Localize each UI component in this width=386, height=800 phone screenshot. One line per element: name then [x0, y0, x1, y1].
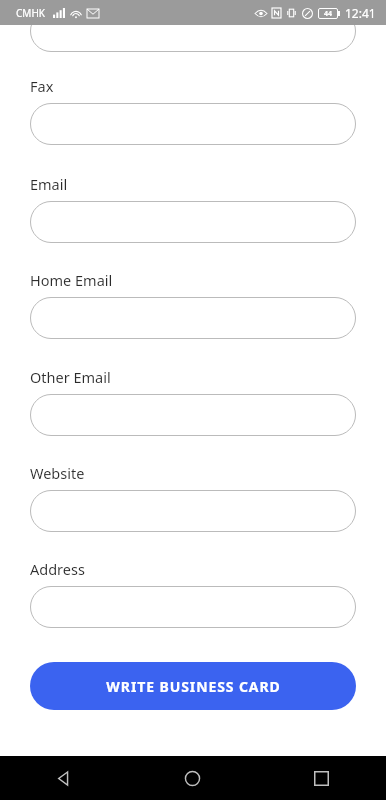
button[interactable]: Back: [0, 756, 128, 800]
staticText: Other Email: [30, 367, 111, 387]
button[interactable]: Phone field: [30, 10, 356, 52]
button[interactable]: WRITE BUSINESS CARD: [30, 662, 356, 710]
staticText: 44: [324, 9, 333, 19]
staticText: Home Email: [30, 270, 113, 290]
button[interactable]: Website field: [30, 490, 356, 532]
button[interactable]: Home Email field: [30, 297, 356, 339]
staticText: CMHK: [16, 6, 45, 20]
staticText: Fax: [30, 76, 54, 96]
button[interactable]: Email field: [30, 201, 356, 243]
button[interactable]: Other Email field: [30, 394, 356, 436]
staticText: 12:41: [345, 5, 376, 21]
staticText: WRITE BUSINESS CARD: [106, 677, 281, 696]
staticText: Email: [30, 174, 68, 194]
button[interactable]: Recent apps: [257, 756, 386, 800]
button[interactable]: Address field: [30, 586, 356, 628]
button[interactable]: Fax field: [30, 103, 356, 145]
staticText: Address: [30, 559, 85, 579]
button[interactable]: Home: [128, 756, 257, 800]
staticText: Website: [30, 463, 85, 483]
